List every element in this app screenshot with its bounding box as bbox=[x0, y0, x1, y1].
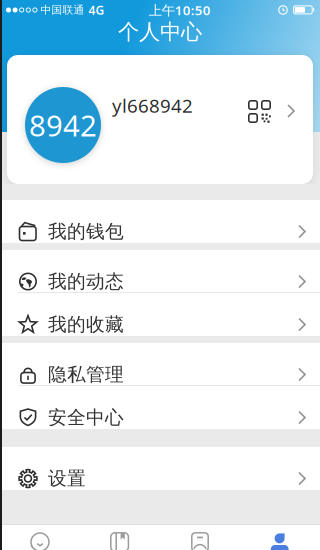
staticText: 中国联通 bbox=[40, 3, 84, 16]
button[interactable]: 8942 bbox=[0, 55, 320, 184]
staticText: 隐私管理 bbox=[48, 363, 124, 386]
staticText: yl668942 bbox=[112, 93, 193, 118]
staticText: 个人中心 bbox=[118, 19, 202, 45]
button[interactable]: 我的钱包 bbox=[0, 200, 320, 243]
button[interactable]: 安全中心 bbox=[0, 386, 320, 429]
staticText: 8942 bbox=[29, 105, 97, 144]
button[interactable]: 通讯录 bbox=[80, 524, 160, 550]
button[interactable]: 隐私管理 bbox=[0, 343, 320, 386]
button[interactable]: 设置 bbox=[0, 447, 320, 490]
staticText: 安全中心 bbox=[48, 406, 124, 429]
staticText: 4G bbox=[88, 2, 104, 18]
button[interactable]: 消息 bbox=[0, 524, 80, 550]
button[interactable]: 我的收藏 bbox=[0, 293, 320, 336]
staticText: 我的钱包 bbox=[48, 220, 124, 243]
button[interactable]: 我的动态 bbox=[0, 250, 320, 293]
button[interactable]: 发现 bbox=[160, 524, 240, 550]
staticText: 我的收藏 bbox=[48, 313, 124, 336]
staticText: 设置 bbox=[48, 467, 86, 490]
staticText: 我的动态 bbox=[48, 270, 124, 293]
staticText: 上午10:50 bbox=[149, 1, 211, 19]
button[interactable]: 我 bbox=[240, 524, 320, 550]
